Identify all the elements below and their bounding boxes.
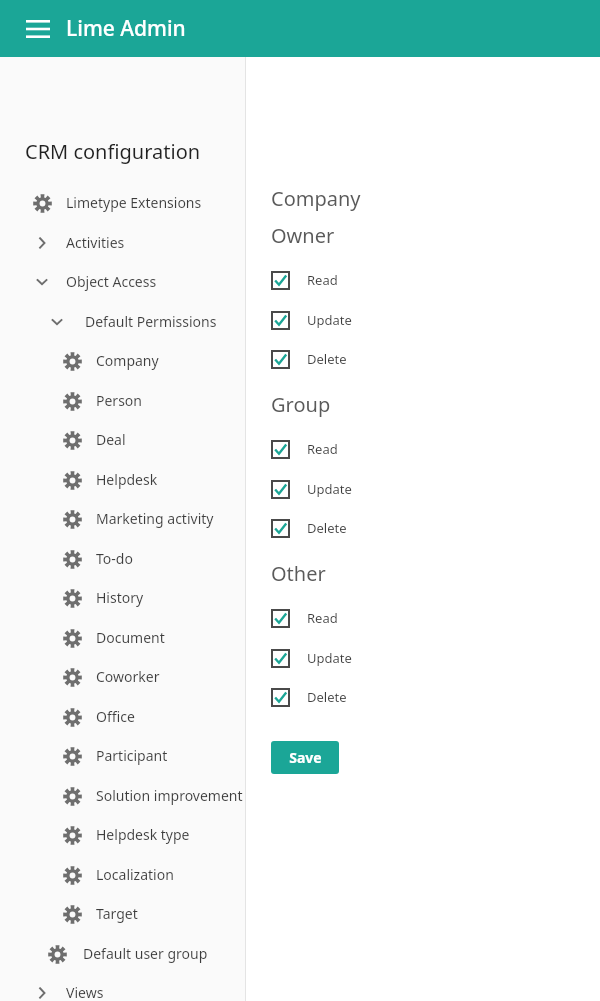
button[interactable]: Marketing activity bbox=[0, 499, 245, 538]
staticText: Delete bbox=[307, 688, 347, 706]
button[interactable]: Views bbox=[0, 973, 245, 1001]
staticText: Localization bbox=[96, 865, 174, 884]
staticText: Owner bbox=[271, 222, 335, 249]
button[interactable]: Open navigation menu bbox=[24, 15, 52, 43]
button[interactable]: Office bbox=[0, 697, 245, 736]
staticText: Update bbox=[307, 480, 352, 498]
button[interactable]: Save bbox=[271, 741, 339, 774]
staticText: Limetype Extensions bbox=[66, 193, 202, 212]
button[interactable]: Update bbox=[271, 645, 352, 671]
staticText: Delete bbox=[307, 350, 347, 368]
staticText: Company bbox=[271, 185, 361, 212]
staticText: Read bbox=[307, 271, 338, 289]
button[interactable]: Read bbox=[271, 605, 338, 631]
button[interactable]: Default Permissions bbox=[0, 302, 245, 341]
button[interactable]: Target bbox=[0, 894, 245, 933]
button[interactable]: Read bbox=[271, 436, 338, 462]
button[interactable]: Update bbox=[271, 476, 352, 502]
staticText: Coworker bbox=[96, 667, 160, 686]
button[interactable]: Company bbox=[0, 341, 245, 380]
staticText: Update bbox=[307, 649, 352, 667]
staticText: History bbox=[96, 588, 144, 607]
button[interactable]: Localization bbox=[0, 855, 245, 894]
staticText: Office bbox=[96, 707, 135, 726]
button[interactable]: Delete bbox=[271, 346, 347, 372]
button[interactable]: Update bbox=[271, 307, 352, 333]
button[interactable]: Helpdesk bbox=[0, 460, 245, 499]
button[interactable]: Coworker bbox=[0, 657, 245, 696]
staticText: Default Permissions bbox=[85, 312, 217, 331]
button[interactable]: Read bbox=[271, 267, 338, 293]
button[interactable]: Helpdesk type bbox=[0, 815, 245, 854]
button[interactable]: Activities bbox=[0, 223, 245, 262]
staticText: Document bbox=[96, 628, 165, 647]
staticText: Deal bbox=[96, 430, 126, 449]
staticText: Marketing activity bbox=[96, 509, 214, 528]
button[interactable]: History bbox=[0, 578, 245, 617]
staticText: To-do bbox=[96, 549, 133, 568]
staticText: Solution improvement bbox=[96, 786, 243, 805]
staticText: Default user group bbox=[83, 944, 208, 963]
staticText: Lime Admin bbox=[66, 14, 186, 43]
staticText: Read bbox=[307, 440, 338, 458]
staticText: Target bbox=[96, 904, 138, 923]
button[interactable]: Default user group bbox=[0, 934, 245, 973]
staticText: Update bbox=[307, 311, 352, 329]
button[interactable]: Delete bbox=[271, 684, 347, 710]
staticText: Save bbox=[289, 748, 322, 767]
staticText: Helpdesk bbox=[96, 470, 158, 489]
button[interactable]: Object Access bbox=[0, 262, 245, 301]
staticText: Delete bbox=[307, 519, 347, 537]
staticText: CRM configuration bbox=[25, 138, 201, 165]
staticText: Helpdesk type bbox=[96, 825, 190, 844]
button[interactable]: Person bbox=[0, 381, 245, 420]
staticText: Company bbox=[96, 351, 159, 370]
button[interactable]: Document bbox=[0, 618, 245, 657]
staticText: Views bbox=[66, 983, 104, 1001]
staticText: Person bbox=[96, 391, 142, 410]
button[interactable]: To-do bbox=[0, 539, 245, 578]
button[interactable]: Limetype Extensions bbox=[0, 183, 245, 222]
staticText: Activities bbox=[66, 233, 125, 252]
button[interactable]: Participant bbox=[0, 736, 245, 775]
staticText: Participant bbox=[96, 746, 168, 765]
button[interactable]: Solution improvement bbox=[0, 776, 245, 815]
staticText: Object Access bbox=[66, 272, 157, 291]
staticText: Group bbox=[271, 391, 331, 418]
button[interactable]: Delete bbox=[271, 515, 347, 541]
staticText: Read bbox=[307, 609, 338, 627]
staticText: Other bbox=[271, 560, 326, 587]
button[interactable]: Deal bbox=[0, 420, 245, 459]
